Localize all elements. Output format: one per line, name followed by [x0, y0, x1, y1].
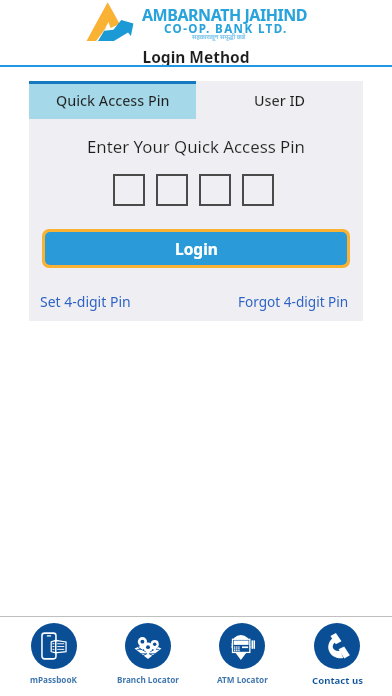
button[interactable]: ATM Locator — [201, 623, 283, 685]
other: Contact us — [314, 623, 360, 669]
button[interactable]: Forgot 4-digit Pin — [238, 292, 349, 311]
staticText: AMBARNATH JAIHIND — [142, 4, 308, 26]
button[interactable] — [113, 174, 145, 206]
staticText: Login Method — [142, 46, 250, 65]
button[interactable]: Set 4-digit Pin — [40, 292, 131, 311]
staticText: Contact us — [312, 674, 363, 687]
staticText: Quick Access Pin — [56, 91, 170, 110]
staticText: सहकारातून समृद्धी कडे — [192, 33, 246, 41]
staticText: CO-OP. BANK LTD. — [164, 21, 288, 37]
other: mPassbooK — [31, 623, 77, 669]
button[interactable]: Contact us — [296, 623, 378, 687]
button[interactable] — [242, 174, 274, 206]
button[interactable]: mPassbooK — [13, 623, 95, 685]
button[interactable]: Branch Locator — [107, 623, 189, 685]
staticText: Branch Locator — [117, 674, 179, 685]
staticText: User ID — [254, 91, 305, 110]
other: ATM Locator — [219, 623, 265, 669]
staticText: Enter Your Quick Access Pin — [29, 135, 363, 158]
button[interactable]: Login — [45, 232, 347, 265]
button[interactable] — [156, 174, 188, 206]
button[interactable] — [199, 174, 231, 206]
button[interactable]: Quick Access Pin — [29, 81, 196, 119]
other: Branch Locator — [125, 623, 171, 669]
staticText: mPassbooK — [30, 674, 78, 685]
staticText: Login — [175, 238, 218, 259]
staticText: ATM Locator — [217, 674, 268, 685]
button[interactable]: User ID — [196, 81, 363, 119]
